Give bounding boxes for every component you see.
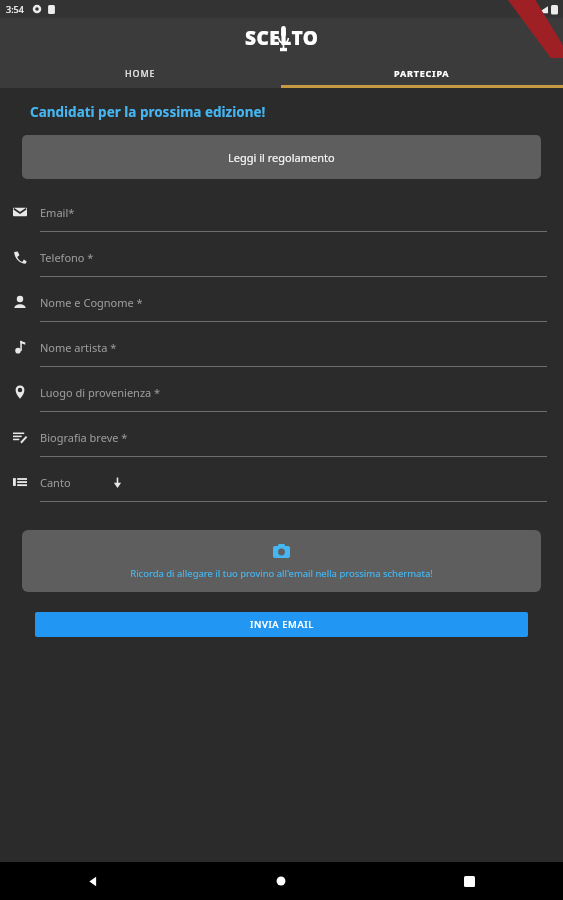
button[interactable]: Nome artista * (0, 332, 563, 377)
button[interactable]: Luogo di provenienza * (0, 377, 563, 422)
button[interactable]: Canto (0, 467, 563, 512)
staticText: SCELTO (245, 25, 319, 51)
other: Espandi (111, 476, 124, 489)
staticText: INVIA EMAIL (250, 618, 314, 631)
button[interactable]: INVIA EMAIL (35, 612, 528, 637)
staticText: Candidati per la prossima edizione! (30, 103, 266, 121)
button[interactable]: Leggi il regolamento (22, 135, 541, 179)
staticText: Leggi il regolamento (228, 150, 335, 165)
button[interactable]: Telefono * (0, 242, 563, 287)
button[interactable]: Nome e Cognome * (0, 287, 563, 332)
button[interactable]: Biografia breve * (0, 422, 563, 467)
staticText: Nome e Cognome * (40, 295, 143, 310)
staticText: Email* (40, 205, 75, 220)
button[interactable]: Back (0, 862, 187, 900)
staticText: 3:54 (6, 3, 24, 15)
staticText: PARTECIPA (394, 67, 450, 79)
button[interactable]: PARTECIPA (281, 58, 563, 88)
staticText: Ricorda di allegare il tuo provino all'e… (130, 567, 433, 580)
other: Allega provino (273, 543, 290, 560)
staticText: Luogo di provenienza * (40, 385, 161, 400)
staticText: Biografia breve * (40, 430, 128, 445)
button[interactable]: Home (187, 862, 375, 900)
button[interactable]: HOME (0, 58, 281, 88)
staticText: HOME (125, 67, 156, 79)
button[interactable]: Email* (0, 197, 563, 242)
staticText: Canto (40, 475, 71, 490)
button[interactable]: Allega provino (22, 530, 541, 592)
staticText: Nome artista * (40, 340, 117, 355)
staticText: Telefono * (40, 250, 94, 265)
button[interactable]: Recent apps (375, 862, 563, 900)
